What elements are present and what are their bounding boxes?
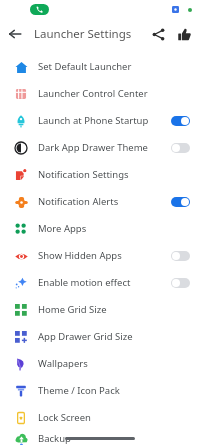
button[interactable] [171,278,190,288]
staticText: Wallpapers [38,357,88,370]
button[interactable]: Backup [0,431,200,445]
staticText: Theme / Icon Pack [38,384,120,397]
button[interactable] [171,116,190,126]
button[interactable]: Share [144,20,172,48]
staticText: Launch at Phone Startup [38,114,149,127]
button[interactable]: Dark App Drawer Theme [0,134,200,161]
staticText: Launcher Control Center [38,87,148,100]
button[interactable]: Enable motion effect [0,269,200,296]
button[interactable] [171,251,190,261]
staticText: Home Grid Size [38,303,107,316]
staticText: Lock Screen [38,411,91,424]
button[interactable] [171,143,190,153]
button[interactable]: Notification Settings [0,161,200,188]
staticText: Backup [38,432,71,445]
button[interactable]: Back [0,19,30,49]
button[interactable]: Rate [172,20,196,48]
staticText: More Apps [38,222,87,235]
staticText: Notification Alerts [38,195,119,208]
button[interactable]: App Drawer Grid Size [0,323,200,350]
button[interactable]: Lock Screen [0,404,200,431]
button[interactable]: Theme / Icon Pack [0,377,200,404]
button[interactable]: Launch at Phone Startup [0,107,200,134]
staticText: App Drawer Grid Size [38,330,133,343]
button[interactable]: Launcher Control Center [0,80,200,107]
staticText: Notification Settings [38,168,129,181]
button[interactable]: Set Default Launcher [0,53,200,80]
staticText: Dark App Drawer Theme [38,141,148,154]
staticText: Set Default Launcher [38,60,132,73]
button[interactable] [171,197,190,207]
staticText: Enable motion effect [38,276,131,289]
button[interactable]: Show Hidden Apps [0,242,200,269]
staticText: Show Hidden Apps [38,249,122,262]
button[interactable]: Wallpapers [0,350,200,377]
button[interactable]: Notification Alerts [0,188,200,215]
staticText: Launcher Settings [34,26,132,42]
button[interactable]: More Apps [0,215,200,242]
button[interactable]: Home Grid Size [0,296,200,323]
